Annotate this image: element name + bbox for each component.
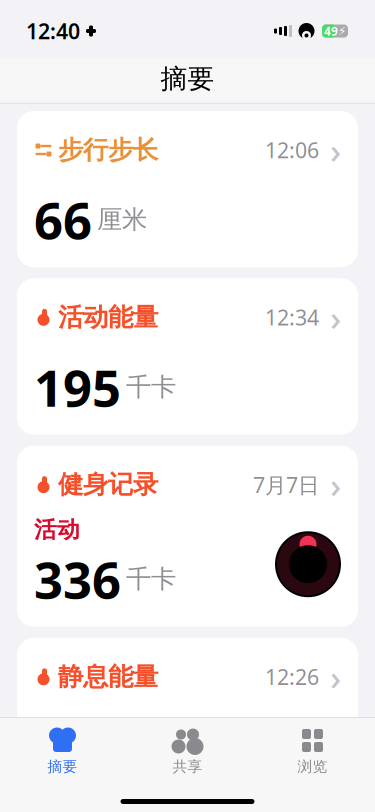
staticText: › <box>330 294 341 340</box>
staticText: › <box>330 462 341 508</box>
staticText: › <box>330 654 341 700</box>
button[interactable]: 健身记录 <box>17 446 358 627</box>
staticText: 步行步长 <box>58 134 158 166</box>
staticText: 49 <box>324 23 338 39</box>
staticText: 千卡 <box>126 564 176 595</box>
button[interactable]: 静息能量 <box>17 638 358 794</box>
button[interactable]: 浏览 <box>250 724 375 777</box>
staticText: 摘要 <box>160 62 214 95</box>
staticText: 活动 <box>34 516 80 543</box>
staticText: 千卡 <box>126 731 176 762</box>
staticText: 静息能量 <box>58 661 158 692</box>
staticText: 健身记录 <box>58 469 158 500</box>
button[interactable]: 摘要 <box>0 724 125 777</box>
staticText: 12:06 <box>265 136 319 164</box>
staticText: 336 <box>34 545 121 613</box>
staticText: 共享 <box>172 757 202 775</box>
staticText: 厘米 <box>97 204 147 235</box>
staticText: 7月7日 <box>253 470 319 499</box>
staticText: › <box>330 127 341 173</box>
staticText: 千卡 <box>126 371 176 402</box>
staticText: 777 <box>34 713 121 780</box>
staticText: ⚡︎ <box>338 24 346 38</box>
staticText: 12:34 <box>265 303 319 331</box>
button[interactable]: 步行步长 <box>17 111 358 267</box>
staticText: 摘要 <box>47 757 77 775</box>
staticText: 活动能量 <box>58 302 158 333</box>
staticText: 12:26 <box>265 663 319 691</box>
button[interactable]: 活动能量 <box>17 278 358 435</box>
staticText: 浏览 <box>297 757 327 775</box>
staticText: 66 <box>34 186 92 253</box>
staticText: 12:40 <box>26 17 80 45</box>
staticText: 195 <box>34 353 121 421</box>
button[interactable]: 共享 <box>125 724 250 777</box>
